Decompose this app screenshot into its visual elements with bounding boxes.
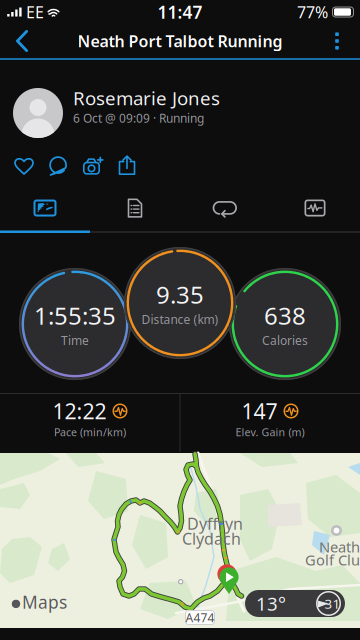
staticText: 12:22: [52, 397, 106, 425]
button[interactable]: Add photo: [78, 153, 108, 179]
staticText: 147: [241, 397, 277, 425]
staticText: 6 Oct @ 09:09 · Running: [73, 110, 204, 126]
staticText: Calories: [262, 332, 308, 348]
button[interactable]: Details: [90, 192, 180, 224]
staticText: 77%: [297, 1, 328, 23]
staticText: 9.35: [156, 279, 204, 310]
staticText: A474: [185, 609, 214, 625]
staticText: Time: [61, 332, 89, 348]
staticText: Maps: [22, 590, 67, 613]
button[interactable]: Back: [2, 24, 42, 58]
staticText: Neath Port Talbot Running: [77, 30, 282, 52]
button[interactable]: Charts: [270, 192, 360, 224]
staticText: 11:47: [157, 0, 202, 23]
staticText: Pace (min/km): [54, 425, 126, 439]
staticText: 1:55:35: [34, 300, 116, 331]
staticText: Dyffryn: [187, 513, 243, 534]
staticText: Clydach: [182, 528, 241, 549]
staticText: Rosemarie Jones: [73, 86, 220, 110]
staticText: Elev. Gain (m): [235, 425, 304, 439]
button[interactable]: Like: [9, 153, 39, 179]
button[interactable]: Map: [0, 192, 90, 224]
staticText: Distance (km): [141, 311, 218, 327]
button[interactable]: Comment: [43, 153, 73, 179]
staticText: Neath: [319, 537, 360, 556]
staticText: 31: [324, 595, 340, 612]
button[interactable]: Share: [112, 152, 142, 178]
staticText: EE: [26, 1, 44, 23]
staticText: 638: [264, 300, 306, 331]
button[interactable]: Laps: [180, 192, 270, 224]
staticText: Golf Club: [305, 550, 360, 569]
button[interactable]: More options: [318, 24, 356, 58]
staticText: 13°: [256, 591, 286, 616]
